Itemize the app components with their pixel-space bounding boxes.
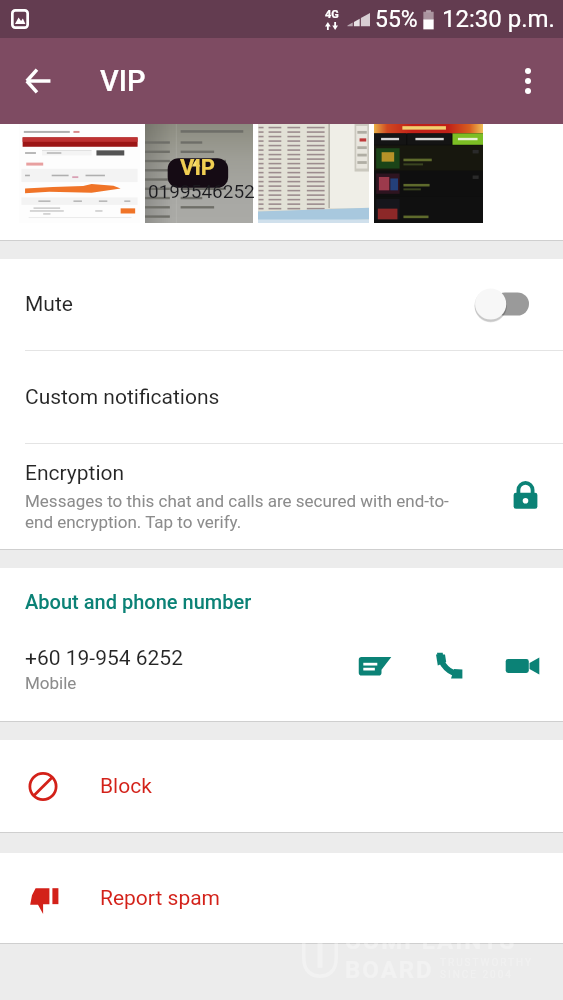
button[interactable]: VIP xyxy=(145,124,253,223)
button[interactable]: Back xyxy=(9,53,65,109)
button[interactable]: More options xyxy=(500,53,556,109)
staticText: 55% xyxy=(375,6,418,33)
button[interactable]: About and phone number xyxy=(0,568,563,639)
button[interactable]: Mute xyxy=(0,259,563,350)
staticText: +60 19-954 6252 xyxy=(25,646,183,671)
staticText: 4G xyxy=(325,8,339,21)
staticText: About and phone number xyxy=(25,590,252,613)
button[interactable]: Video call xyxy=(500,644,544,688)
staticText: Custom notifications xyxy=(25,385,220,410)
staticText: Encryption xyxy=(25,461,125,486)
staticText: Mobile xyxy=(25,673,77,693)
staticText: Mute xyxy=(25,292,73,317)
button[interactable]: Report spam xyxy=(0,853,563,943)
staticText: Messages to this chat and calls are secu… xyxy=(25,491,465,533)
staticText: COMPLAINTS xyxy=(345,927,517,955)
staticText: 0199546252 xyxy=(148,180,255,202)
button[interactable]: Block xyxy=(0,740,563,832)
staticText: 12:30 p.m. xyxy=(442,5,555,33)
button[interactable] xyxy=(19,124,140,223)
staticText: VIP xyxy=(100,64,146,98)
staticText: Report spam xyxy=(100,886,221,911)
button[interactable] xyxy=(374,124,483,223)
button[interactable]: Message xyxy=(352,644,396,688)
staticText: Block xyxy=(100,774,152,799)
button[interactable]: Call xyxy=(426,644,470,688)
button[interactable]: Encryption xyxy=(0,444,563,549)
button[interactable] xyxy=(258,124,369,223)
button[interactable]: Custom notifications xyxy=(0,351,563,443)
staticText: VIP xyxy=(180,155,216,181)
